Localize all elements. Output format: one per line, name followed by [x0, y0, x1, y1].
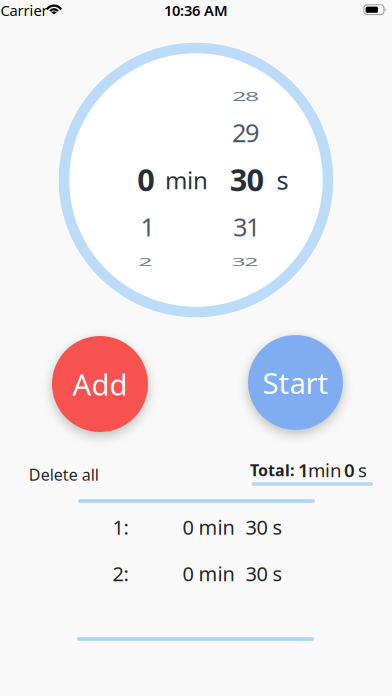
staticText: 0: [137, 159, 155, 200]
staticText: min: [165, 164, 208, 196]
staticText: 32: [231, 245, 258, 278]
staticText: 1: [298, 458, 309, 482]
staticText: min: [308, 458, 342, 482]
staticText: 30: [230, 159, 264, 200]
button[interactable]: Add: [52, 336, 148, 432]
staticText: 0 min: [182, 560, 234, 587]
staticText: 28: [232, 79, 259, 113]
staticText: 29: [232, 115, 259, 149]
button[interactable]: Delete all: [29, 464, 99, 485]
staticText: 0 min: [182, 514, 234, 540]
staticText: s: [276, 163, 288, 197]
staticText: Delete all: [29, 464, 99, 485]
staticText: 10:36 AM: [164, 1, 228, 20]
staticText: Start: [262, 363, 328, 402]
staticText: Total:: [250, 459, 294, 481]
staticText: 2: [138, 245, 152, 278]
staticText: 2:: [112, 560, 128, 587]
staticText: 30 s: [245, 514, 282, 540]
staticText: 31: [233, 210, 260, 243]
staticText: Carrier: [0, 1, 47, 20]
staticText: 1:: [112, 514, 128, 540]
button[interactable]: Start: [248, 335, 343, 430]
staticText: s: [358, 458, 367, 482]
staticText: 30 s: [245, 560, 282, 587]
staticText: 1: [140, 210, 154, 243]
staticText: Add: [72, 364, 127, 403]
staticText: 0: [344, 458, 355, 482]
